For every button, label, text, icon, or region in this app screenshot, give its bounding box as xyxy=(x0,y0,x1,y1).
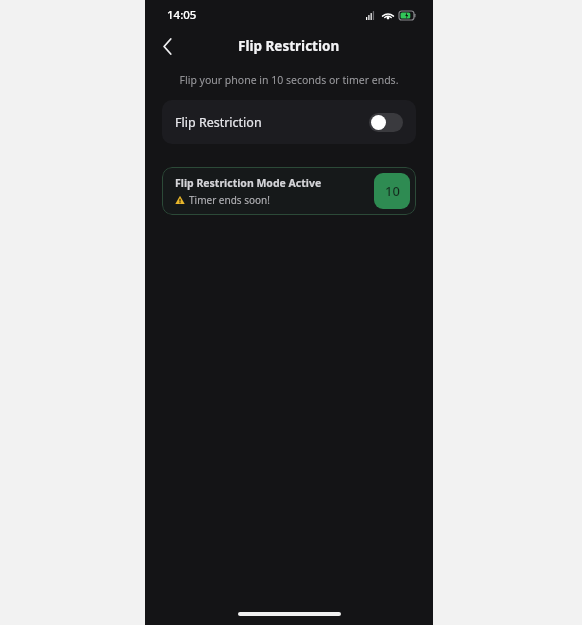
staticText: Flip Restriction xyxy=(238,37,340,55)
staticText: Flip your phone in 10 seconds or timer e… xyxy=(145,73,433,87)
button[interactable]: Flip Restriction toggle xyxy=(369,113,403,132)
staticText: 14:05 xyxy=(167,7,197,23)
staticText: Timer ends soon! xyxy=(189,193,270,207)
staticText: Flip Restriction Mode Active xyxy=(175,176,322,190)
staticText: Flip Restriction xyxy=(175,114,262,131)
button[interactable]: Flip Restriction xyxy=(162,100,416,144)
button[interactable]: Flip Restriction Mode Active xyxy=(162,167,416,215)
button[interactable]: Back xyxy=(149,30,185,62)
staticText: 10 xyxy=(385,182,400,200)
